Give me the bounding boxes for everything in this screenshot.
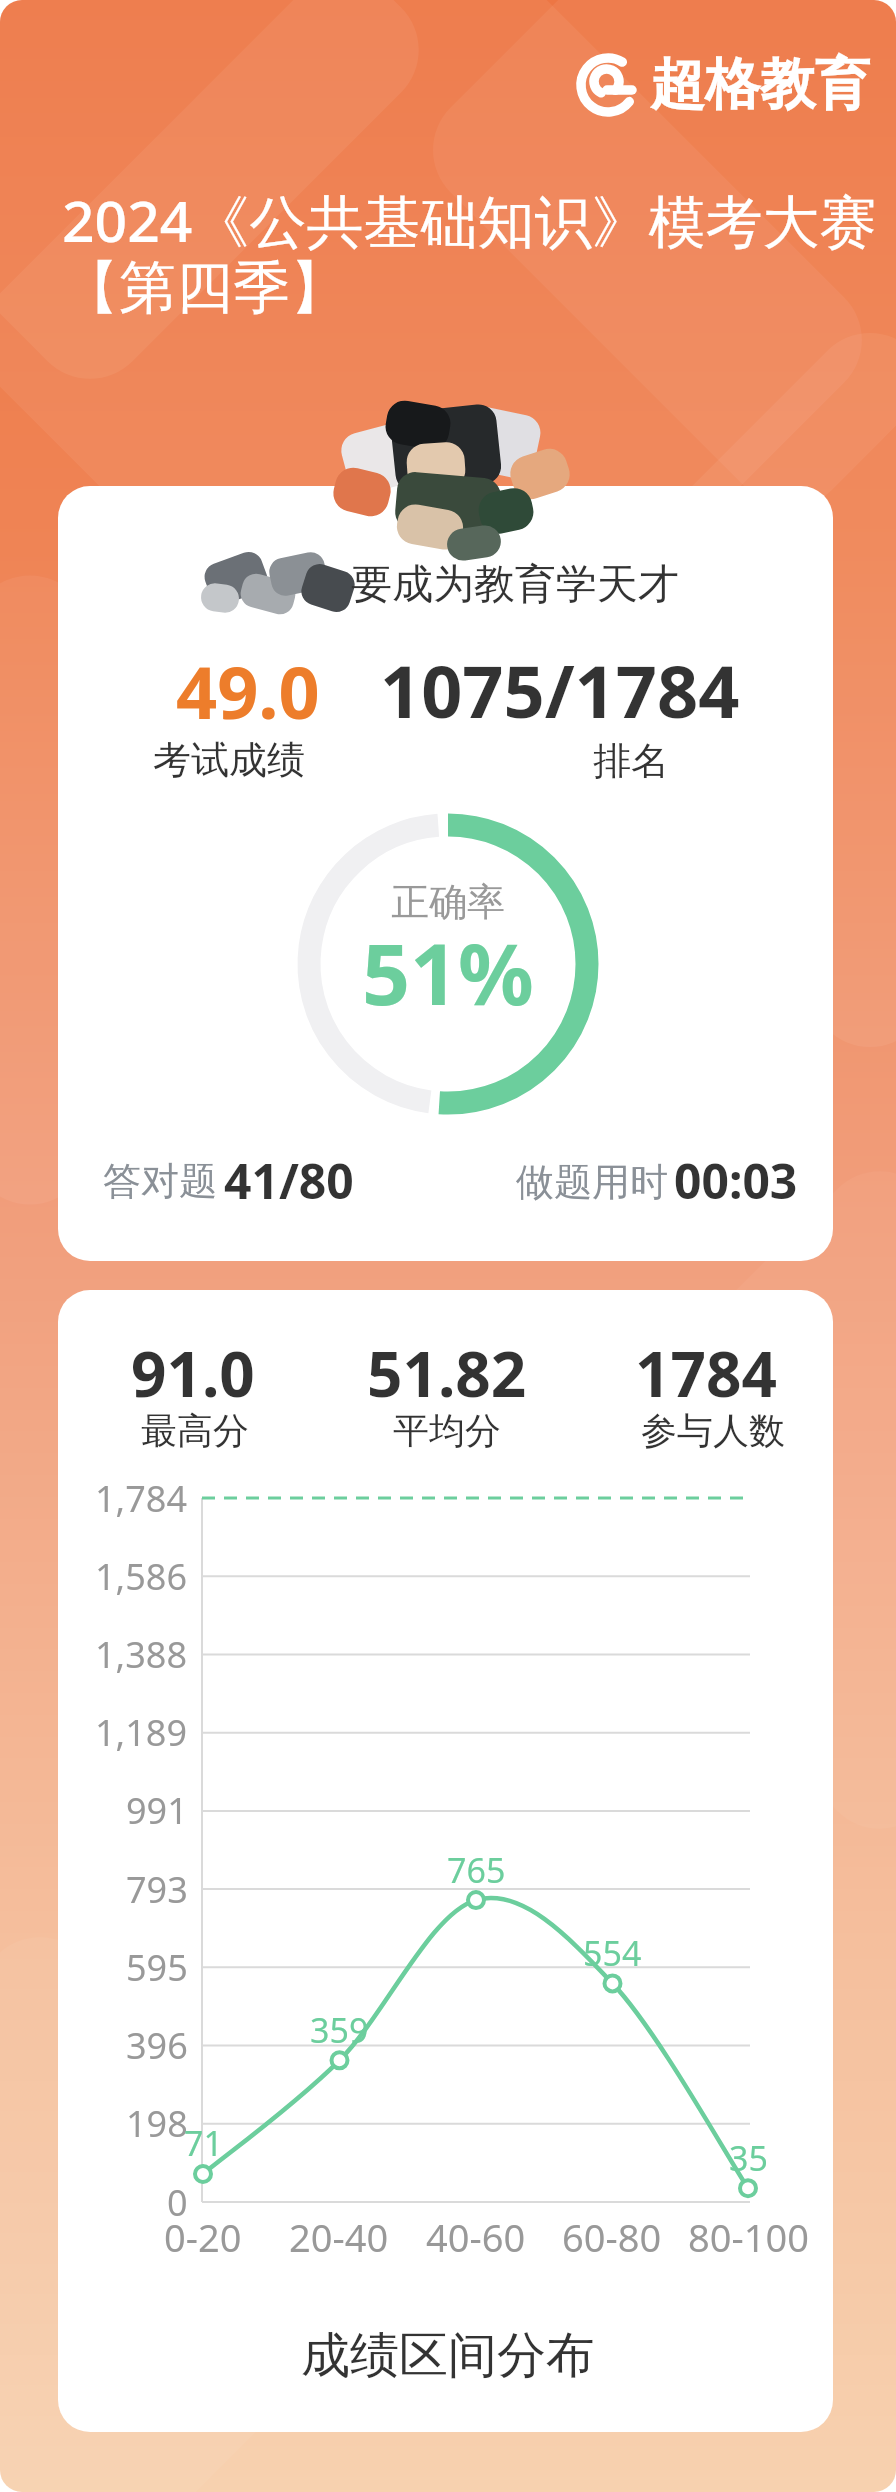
- staticText: 排名: [593, 737, 669, 785]
- staticText: 做题用时: [516, 1158, 668, 1206]
- staticText: 198: [126, 2099, 188, 2148]
- staticText: 1,189: [95, 1708, 188, 1757]
- staticText: 793: [126, 1865, 188, 1914]
- staticText: 40-60: [426, 2211, 526, 2263]
- staticText: 1,586: [95, 1552, 188, 1601]
- button[interactable]: 91.0: [58, 1290, 833, 2432]
- staticText: 要成为教育学天才: [351, 559, 679, 611]
- staticText: 991: [126, 1786, 188, 1835]
- staticText: 超格教育: [650, 50, 870, 119]
- staticText: 60-80: [562, 2211, 662, 2263]
- staticText: 35: [729, 2135, 768, 2179]
- staticText: 71: [184, 2120, 223, 2164]
- staticText: 0-20: [164, 2211, 242, 2263]
- staticText: 20-40: [289, 2211, 389, 2263]
- staticText: 51%: [362, 915, 534, 1025]
- staticText: 考试成绩: [153, 736, 305, 784]
- staticText: 1,784: [95, 1474, 188, 1523]
- staticText: 91.0: [131, 1331, 255, 1415]
- staticText: 396: [126, 2021, 188, 2070]
- staticText: 595: [126, 1943, 188, 1992]
- staticText: 80-100: [688, 2211, 809, 2263]
- staticText: 51.82: [367, 1331, 527, 1415]
- staticText: 1784: [635, 1331, 777, 1415]
- staticText: 359: [310, 2007, 369, 2051]
- staticText: 41/80: [224, 1148, 354, 1213]
- staticText: 2024《公共基础知识》模考大赛 【第四季】: [62, 181, 877, 323]
- staticText: 参与人数: [641, 1408, 785, 1453]
- staticText: 49.0: [176, 642, 320, 740]
- staticText: 最高分: [141, 1408, 249, 1453]
- staticText: 0: [167, 2178, 188, 2227]
- staticText: 1,388: [95, 1630, 188, 1679]
- staticText: 765: [447, 1847, 506, 1891]
- staticText: 554: [583, 1930, 642, 1974]
- button[interactable]: 超格教育: [575, 50, 870, 119]
- staticText: 1075/1784: [380, 641, 740, 739]
- staticText: 答对题: [103, 1157, 217, 1205]
- button[interactable]: 要成为教育学天才: [58, 486, 833, 1261]
- staticText: 成绩区间分布: [301, 2325, 595, 2387]
- staticText: 正确率: [391, 878, 505, 926]
- staticText: 平均分: [393, 1408, 501, 1453]
- staticText: 00:03: [674, 1148, 798, 1213]
